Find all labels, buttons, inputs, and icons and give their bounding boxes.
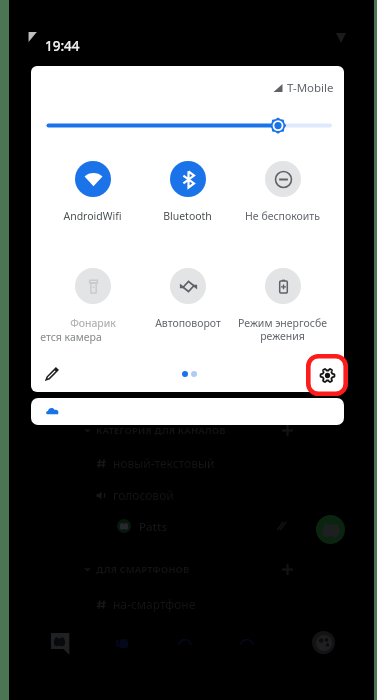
button[interactable]: Profile	[312, 631, 335, 654]
staticText: Не беспокоить	[245, 209, 320, 223]
staticText: Фонарик	[70, 316, 116, 330]
button[interactable]: новый-текстовый	[96, 455, 271, 471]
button[interactable]: голосовой	[96, 487, 271, 503]
staticText: Bluetooth	[163, 209, 212, 223]
button[interactable]: Friends	[238, 636, 256, 654]
staticText: ется камера	[40, 330, 102, 344]
button[interactable]: на-смартфоне	[96, 596, 271, 612]
staticText: Режим энергосбе режения	[235, 316, 330, 343]
button[interactable]: Servers	[50, 632, 73, 655]
staticText: Patts	[139, 519, 167, 533]
staticText: голосовой	[113, 487, 174, 503]
button[interactable]: Settings	[306, 354, 348, 396]
button[interactable]	[31, 398, 344, 425]
staticText: КАТЕГОРИЯ ДЛЯ КАНАЛОВ	[96, 424, 226, 436]
button[interactable]: Фонарик	[45, 268, 140, 344]
button[interactable]: Не беспокоить	[235, 161, 330, 223]
button[interactable]: Bluetooth	[140, 161, 235, 223]
staticText: 19:44	[45, 37, 80, 55]
staticText: Автоповорот	[155, 316, 221, 330]
button[interactable]: Discord	[316, 515, 345, 544]
staticText: новый-текстовый	[113, 455, 215, 471]
button[interactable]: Автоповорот	[140, 268, 235, 330]
staticText: на-смартфоне	[113, 596, 196, 612]
button[interactable]: Edit tiles	[36, 358, 68, 390]
button[interactable]: AndroidWifi	[45, 161, 140, 223]
button[interactable]: Search	[176, 636, 194, 654]
button[interactable]: КАТЕГОРИЯ ДЛЯ КАНАЛОВ	[84, 424, 293, 436]
staticText: ДЛЯ СМАРТФОНОВ	[96, 563, 190, 575]
button[interactable]: Режим энергосбе режения	[235, 268, 330, 343]
button[interactable]: Messages	[114, 636, 132, 654]
staticText: T-Mobile	[287, 80, 334, 96]
button[interactable]: ДЛЯ СМАРТФОНОВ	[84, 563, 293, 575]
button[interactable]: Patts	[117, 519, 292, 533]
staticText: AndroidWifi	[63, 209, 122, 223]
